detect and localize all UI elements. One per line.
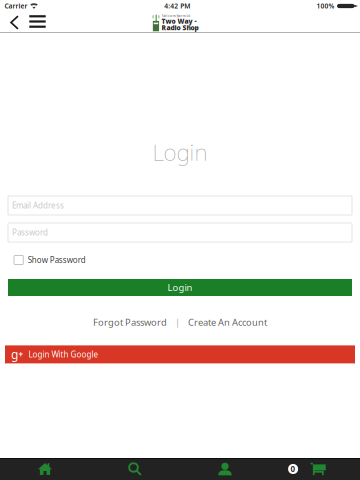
staticText: 4:42 PM bbox=[164, 2, 190, 10]
staticText: 100% bbox=[316, 2, 334, 10]
staticText: Radiocoms Systems Ltd bbox=[161, 14, 190, 18]
staticText: 0 bbox=[291, 464, 296, 474]
staticText: Create An Account bbox=[188, 316, 267, 328]
button[interactable]: g bbox=[0, 345, 360, 363]
staticText: Two Way - bbox=[161, 17, 196, 25]
staticText: Forgot Password bbox=[93, 316, 167, 328]
button[interactable]: Search bbox=[90, 458, 180, 480]
button[interactable]: Show Password bbox=[0, 254, 360, 266]
staticText: Carrier bbox=[4, 2, 27, 10]
staticText: Email Address bbox=[12, 200, 64, 211]
staticText: Password bbox=[12, 227, 48, 238]
staticText: Radio Shop bbox=[161, 23, 198, 32]
staticText: Show Password bbox=[28, 255, 86, 265]
staticText: Login bbox=[152, 137, 207, 167]
staticText: Login bbox=[167, 281, 192, 294]
button[interactable]: Forgot Password bbox=[93, 317, 167, 328]
button[interactable]: Account bbox=[180, 458, 270, 480]
button[interactable]: Login bbox=[0, 279, 360, 296]
button[interactable]: Email Address bbox=[8, 196, 352, 215]
staticText: + bbox=[18, 349, 23, 360]
button[interactable]: Cart, 0 items bbox=[270, 458, 360, 480]
staticText: | bbox=[167, 316, 188, 328]
staticText: g bbox=[11, 346, 18, 362]
button[interactable]: Two Way Radio Shop bbox=[151, 13, 198, 31]
button[interactable]: Create An Account bbox=[188, 317, 267, 328]
staticText: Login With Google bbox=[28, 349, 98, 360]
button[interactable]: Menu bbox=[24, 12, 48, 33]
button[interactable]: Password bbox=[8, 223, 352, 242]
button[interactable]: Home bbox=[0, 458, 90, 480]
button[interactable]: Back bbox=[5, 12, 24, 33]
